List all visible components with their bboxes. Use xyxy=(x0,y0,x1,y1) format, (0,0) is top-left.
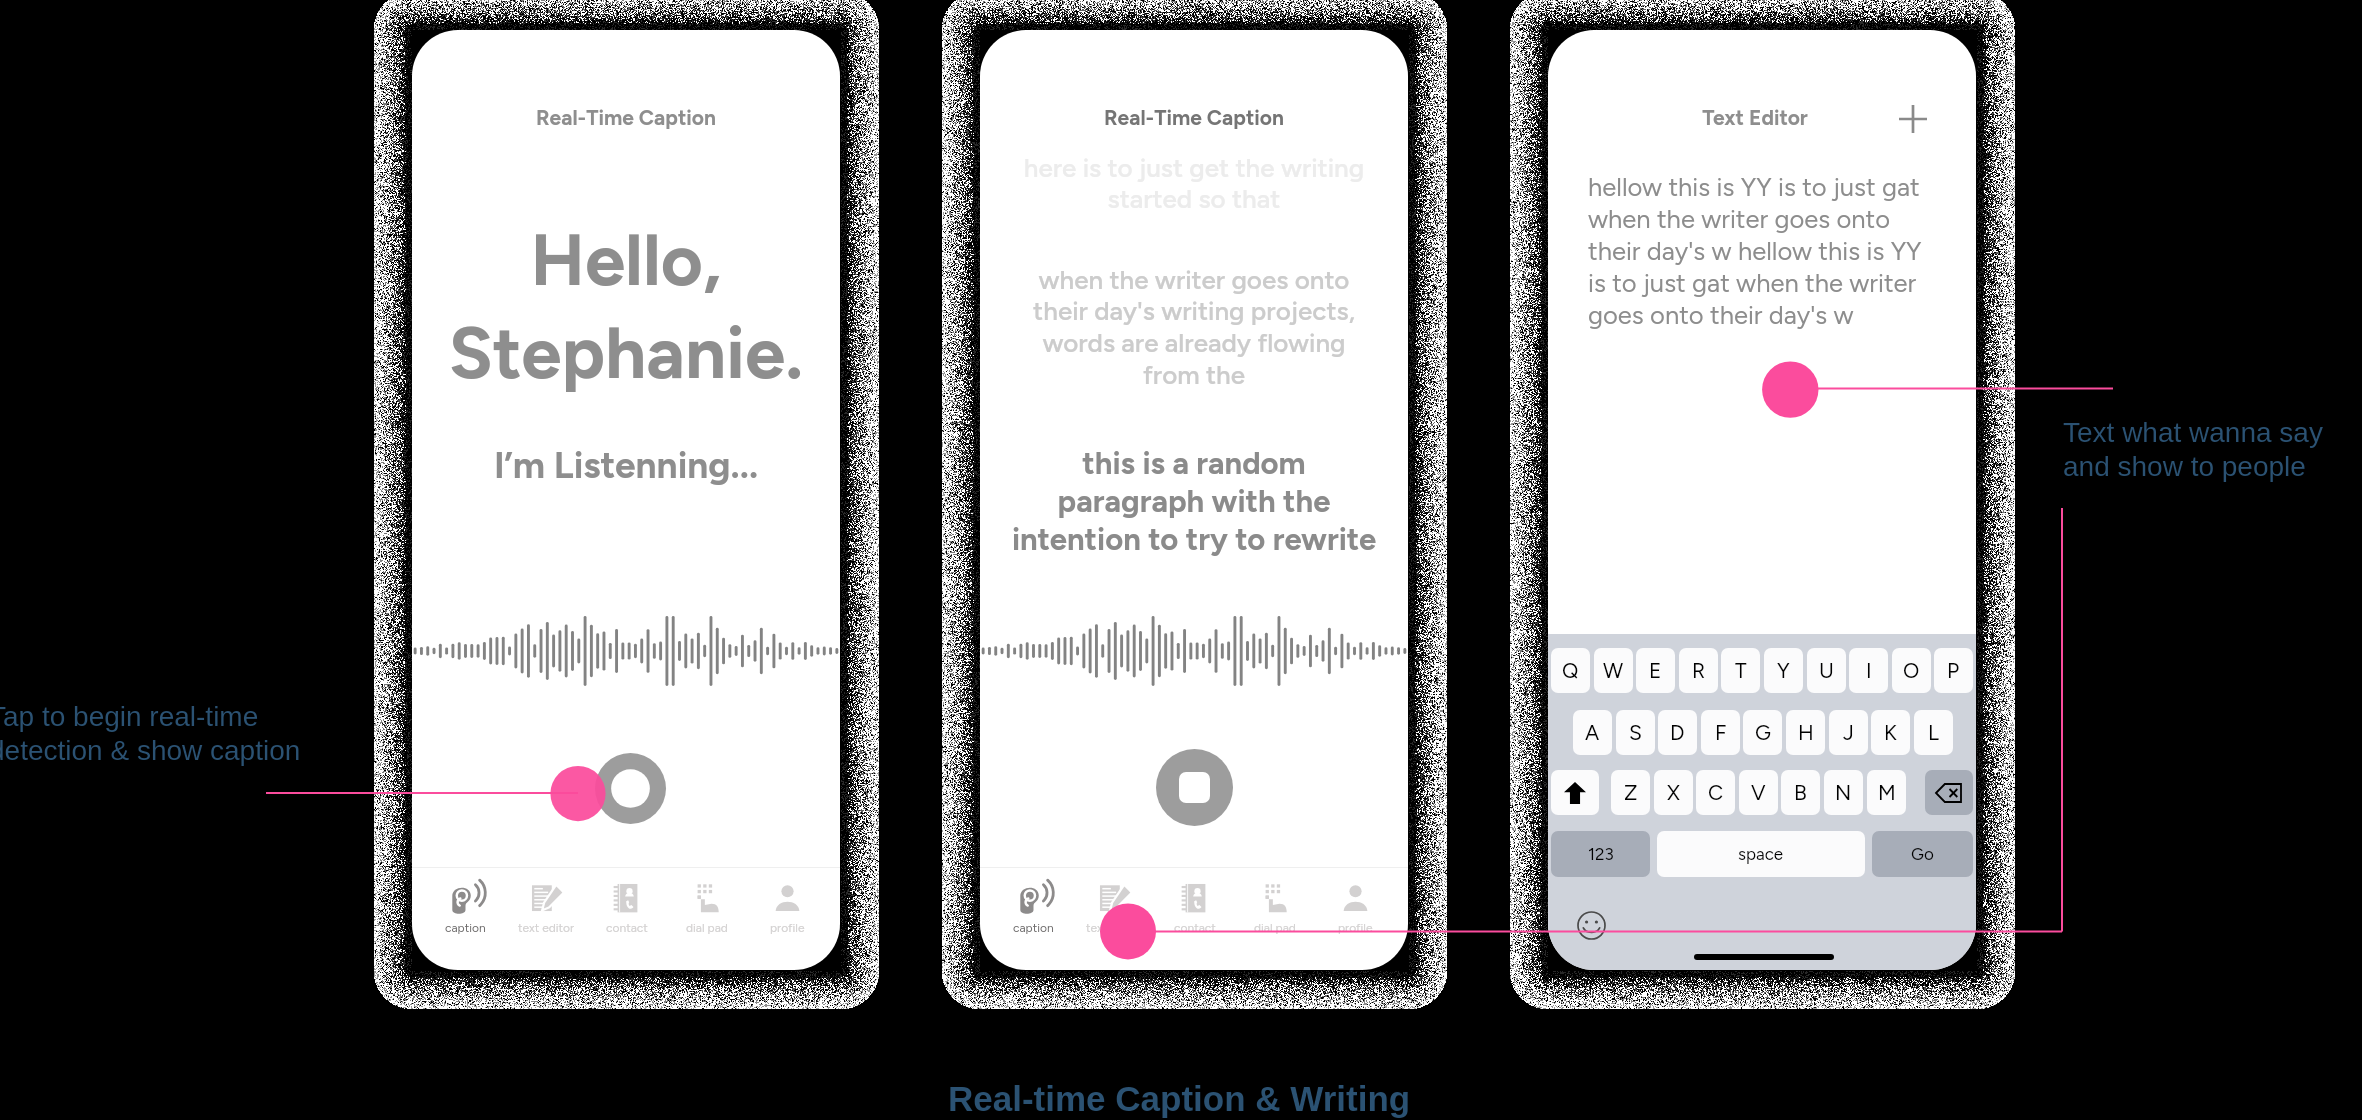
button[interactable]: B xyxy=(1781,770,1820,815)
staticText: V xyxy=(1751,780,1766,805)
button[interactable]: New note xyxy=(1893,99,1933,139)
staticText: A xyxy=(1585,720,1600,745)
button[interactable]: Emoji keyboard xyxy=(1577,911,1606,940)
staticText: Y xyxy=(1777,658,1790,683)
staticText: F xyxy=(1715,720,1727,745)
staticText: here is to just get the writing started … xyxy=(980,152,1408,214)
button[interactable]: dial pad xyxy=(667,868,747,970)
staticText: J xyxy=(1843,720,1854,745)
button[interactable]: D xyxy=(1658,710,1697,755)
button[interactable]: E xyxy=(1636,648,1675,693)
button[interactable]: profile xyxy=(1315,868,1395,970)
staticText: profile xyxy=(770,921,805,935)
staticText: Real-Time Caption xyxy=(980,105,1408,130)
button[interactable]: O xyxy=(1892,648,1931,693)
staticText: S xyxy=(1629,720,1642,745)
staticText: G xyxy=(1755,720,1771,745)
staticText: dial pad xyxy=(1254,921,1296,935)
staticText: Hello, Stephanie. xyxy=(412,216,840,396)
button[interactable]: hellow this is YY is to just gat when th… xyxy=(1588,172,1928,352)
staticText: H xyxy=(1798,720,1814,745)
button[interactable]: Y xyxy=(1764,648,1803,693)
button[interactable]: profile xyxy=(747,868,827,970)
button[interactable]: Go xyxy=(1872,831,1973,877)
staticText: Real-Time Caption xyxy=(412,105,840,130)
staticText: T xyxy=(1735,658,1747,683)
button[interactable]: M xyxy=(1867,770,1906,815)
button[interactable]: text editor xyxy=(1074,868,1155,970)
button[interactable]: R xyxy=(1679,648,1718,693)
button[interactable]: I xyxy=(1849,648,1888,693)
staticText: D xyxy=(1670,720,1685,745)
button[interactable]: K xyxy=(1871,710,1910,755)
button[interactable]: caption xyxy=(993,868,1074,970)
staticText: dial pad xyxy=(686,921,728,935)
button[interactable]: text editor xyxy=(506,868,587,970)
staticText: M xyxy=(1878,780,1896,805)
button[interactable]: H xyxy=(1786,710,1825,755)
button[interactable]: L xyxy=(1914,710,1953,755)
staticText: Real-time Caption & Writing xyxy=(948,1079,1411,1118)
button[interactable]: contact xyxy=(1155,868,1235,970)
button[interactable]: Start real-time caption xyxy=(595,753,666,824)
button[interactable]: 123 xyxy=(1551,831,1650,877)
staticText: hellow this is YY is to just gat when th… xyxy=(1588,172,1928,330)
button[interactable]: X xyxy=(1654,770,1693,815)
staticText: R xyxy=(1692,658,1706,683)
button[interactable]: V xyxy=(1739,770,1778,815)
button[interactable]: contact xyxy=(587,868,667,970)
staticText: caption xyxy=(445,921,486,935)
button[interactable]: W xyxy=(1594,648,1633,693)
staticText: O xyxy=(1903,658,1920,683)
staticText: Z xyxy=(1624,780,1638,805)
staticText: L xyxy=(1928,720,1939,745)
button[interactable]: Backspace xyxy=(1925,770,1973,815)
button[interactable]: caption xyxy=(425,868,506,970)
button[interactable]: Shift xyxy=(1551,770,1599,815)
staticText: text editor xyxy=(1086,921,1143,935)
staticText: I’m Listenning... xyxy=(412,443,840,487)
staticText: 123 xyxy=(1588,844,1614,864)
staticText: Text Editor xyxy=(1548,105,1969,130)
staticText: N xyxy=(1835,780,1852,805)
button[interactable]: Z xyxy=(1611,770,1650,815)
staticText: Q xyxy=(1562,658,1579,683)
button[interactable]: T xyxy=(1721,648,1760,693)
staticText: space xyxy=(1738,844,1784,864)
staticText: B xyxy=(1794,780,1807,805)
staticText: this is a random paragraph with the inte… xyxy=(980,445,1408,558)
button[interactable]: Stop recording xyxy=(1156,749,1233,826)
staticText: text editor xyxy=(518,921,575,935)
staticText: U xyxy=(1819,658,1834,683)
staticText: Text what wanna say and show to people xyxy=(2063,417,2323,482)
staticText: Go xyxy=(1911,844,1934,864)
staticText: when the writer goes onto their day's wr… xyxy=(980,264,1408,390)
button[interactable]: F xyxy=(1701,710,1740,755)
button[interactable]: J xyxy=(1829,710,1868,755)
button[interactable]: S xyxy=(1616,710,1655,755)
staticText: profile xyxy=(1338,921,1373,935)
button[interactable]: C xyxy=(1696,770,1735,815)
button[interactable]: dial pad xyxy=(1235,868,1315,970)
staticText: W xyxy=(1603,658,1624,683)
staticText: Tap to begin real-time detection & show … xyxy=(0,701,301,766)
staticText: I xyxy=(1866,658,1872,683)
button[interactable]: P xyxy=(1934,648,1973,693)
staticText: K xyxy=(1884,720,1897,745)
staticText: contact xyxy=(1174,921,1216,935)
button[interactable]: Q xyxy=(1551,648,1590,693)
staticText: X xyxy=(1667,780,1680,805)
staticText: contact xyxy=(606,921,648,935)
button[interactable]: A xyxy=(1573,710,1612,755)
staticText: C xyxy=(1708,780,1724,805)
staticText: P xyxy=(1947,658,1960,683)
button[interactable]: U xyxy=(1807,648,1846,693)
button[interactable]: space xyxy=(1657,831,1865,877)
button[interactable]: G xyxy=(1743,710,1782,755)
staticText: caption xyxy=(1013,921,1054,935)
button[interactable]: N xyxy=(1824,770,1863,815)
staticText: E xyxy=(1649,658,1662,683)
